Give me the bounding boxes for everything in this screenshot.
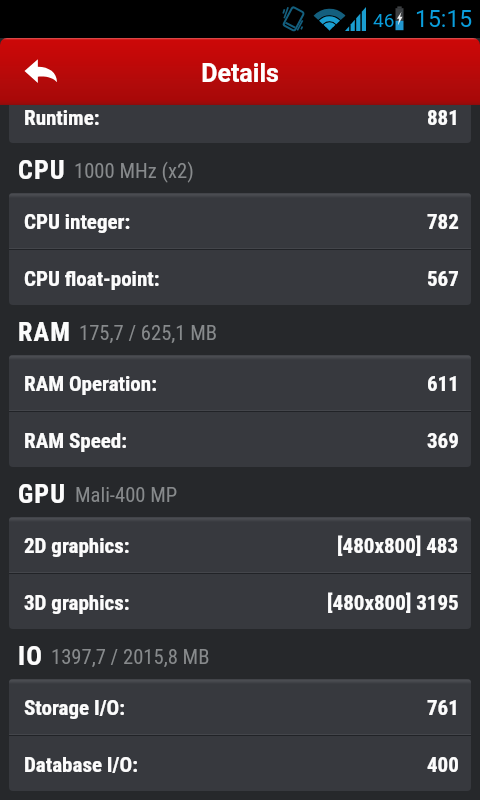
staticText: CPU integer:: [24, 210, 131, 235]
button[interactable]: CPU float-point:: [9, 250, 471, 305]
staticText: 369: [427, 429, 459, 454]
button[interactable]: Runtime:: [9, 87, 471, 143]
staticText: 2D graphics:: [24, 534, 130, 559]
staticText: RAM Speed:: [24, 429, 127, 454]
button[interactable]: RAM Operation:: [9, 355, 471, 410]
button[interactable]: Storage I/O:: [9, 679, 471, 734]
staticText: Database I/O:: [24, 753, 138, 778]
staticText: Runtime:: [24, 106, 100, 131]
staticText: 761: [427, 696, 459, 721]
staticText: 46: [373, 9, 395, 31]
staticText: 611: [427, 372, 459, 397]
button[interactable]: Database I/O:: [9, 736, 471, 791]
staticText: 400: [427, 753, 459, 778]
staticText: Storage I/O:: [24, 696, 126, 721]
staticText: [480x800] 3195: [327, 591, 459, 616]
button[interactable]: 2D graphics:: [9, 517, 471, 572]
button[interactable]: 3D graphics:: [9, 574, 471, 629]
staticText: Details: [201, 59, 279, 88]
staticText: RAM Operation:: [24, 372, 157, 397]
staticText: CPU: [18, 155, 66, 185]
button[interactable]: Back: [24, 59, 57, 83]
staticText: 881: [427, 106, 459, 131]
staticText: GPU: [18, 479, 67, 509]
staticText: CPU float-point:: [24, 267, 160, 292]
staticText: 3D graphics:: [24, 591, 130, 616]
staticText: 782: [427, 210, 459, 235]
staticText: 175,7 / 625,1 MB: [79, 321, 218, 345]
staticText: RAM: [18, 317, 71, 347]
staticText: 567: [427, 267, 459, 292]
staticText: IO: [18, 641, 43, 671]
button[interactable]: CPU integer:: [9, 193, 471, 248]
staticText: 15:15: [415, 6, 473, 33]
staticText: 1000 MHz (x2): [74, 159, 194, 183]
staticText: Mali-400 MP: [75, 483, 178, 507]
button[interactable]: RAM Speed:: [9, 412, 471, 467]
staticText: 1397,7 / 2015,8 MB: [51, 645, 210, 669]
staticText: [480x800] 483: [337, 534, 459, 559]
